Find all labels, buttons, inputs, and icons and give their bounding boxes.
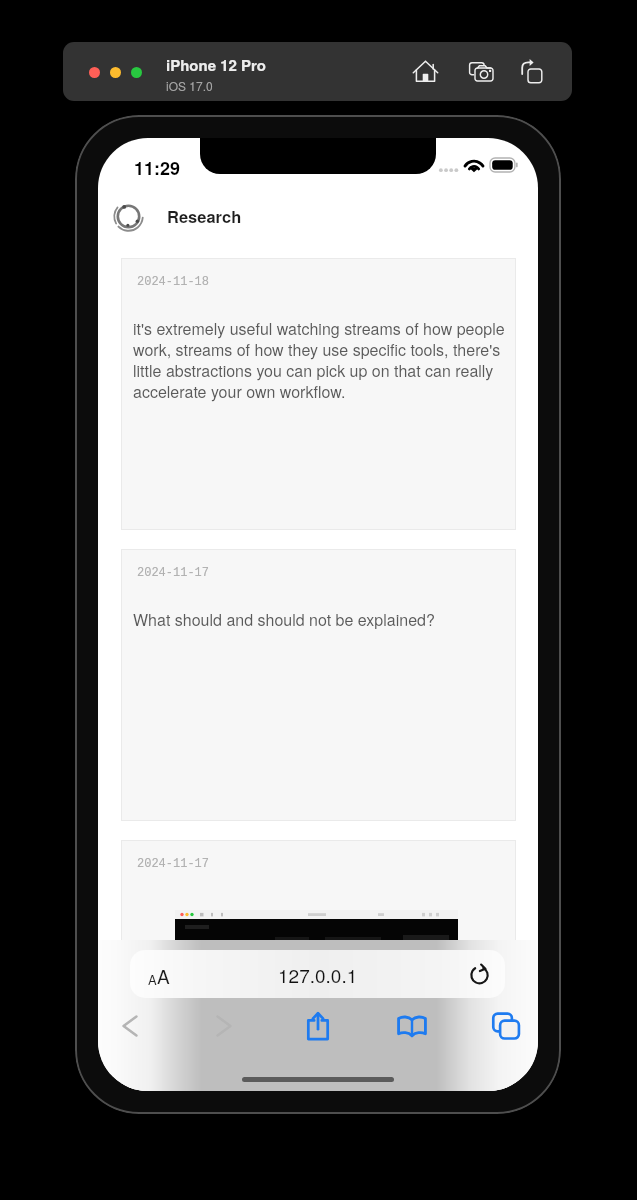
staticText: A [157, 962, 170, 989]
button[interactable]: Reload page [468, 963, 491, 986]
staticText: What should and should not be explained? [133, 608, 435, 631]
staticText: it's extremely useful watching streams o… [133, 317, 508, 402]
staticText: iOS 17.0 [166, 77, 213, 94]
staticText: Research [167, 204, 242, 228]
button[interactable]: Minimize window [110, 67, 121, 78]
button[interactable]: Tabs [487, 1007, 525, 1045]
staticText: 11:29 [134, 155, 181, 181]
button[interactable]: 2024-11-18 [121, 258, 516, 530]
staticText: 2024-11-18 [137, 275, 210, 289]
button[interactable]: Maximize window [131, 67, 142, 78]
button[interactable]: Close window [89, 67, 100, 78]
button[interactable]: Home [410, 56, 441, 87]
staticText: iPhone 12 Pro [166, 54, 267, 75]
button[interactable]: Rotate device [517, 55, 548, 86]
staticText: 2024-11-17 [137, 566, 210, 580]
button[interactable]: Back [111, 1007, 149, 1045]
button[interactable]: Bookmarks [393, 1007, 431, 1045]
staticText: A [148, 970, 157, 989]
staticText: 2024-11-17 [137, 857, 210, 871]
button[interactable]: Share [299, 1007, 337, 1045]
staticText: 127.0.0.1 [278, 961, 358, 988]
button[interactable]: A [130, 950, 505, 998]
button[interactable]: 2024-11-17 [121, 549, 516, 821]
button[interactable]: Screenshot [466, 57, 497, 88]
button[interactable]: 2024-11-17 [121, 840, 516, 1091]
